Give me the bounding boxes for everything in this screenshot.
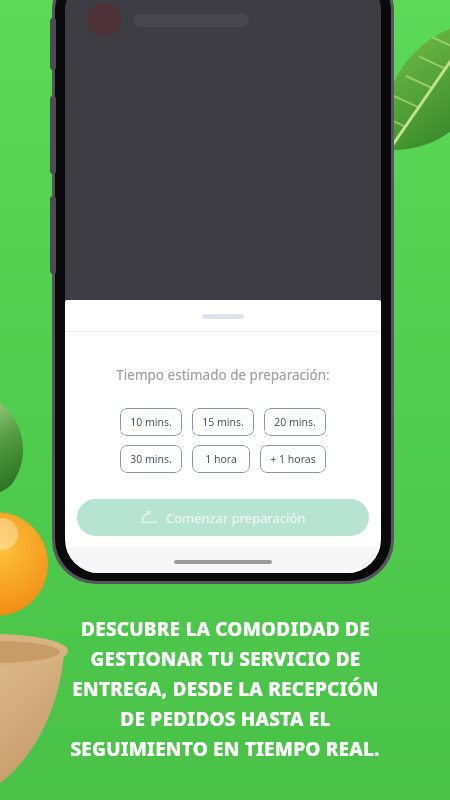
staticText: Comenzar preparación [166,509,306,527]
staticText: 30 mins. [130,452,172,466]
staticText: 20 mins. [274,415,316,429]
staticText: 1 hora [205,452,237,466]
button[interactable]: + 1 horas [260,445,326,473]
button[interactable]: 10 mins. [120,408,182,436]
staticText: 15 mins. [202,415,244,429]
button[interactable] [202,314,244,319]
staticText: + 1 horas [270,452,316,466]
staticText: GESTIONAR TU SERVICIO DE [90,646,361,672]
button[interactable]: 20 mins. [264,408,326,436]
button[interactable]: 30 mins. [120,445,182,473]
button[interactable]: Comenzar preparación [77,499,369,536]
staticText: SEGUIMIENTO EN TIEMPO REAL. [70,736,380,762]
staticText: ENTREGA, DESDE LA RECEPCIÓN [72,676,379,702]
button[interactable]: 15 mins. [192,408,254,436]
staticText: Tiempo estimado de preparación: [116,366,330,384]
other: Comenzar preparación [141,510,157,526]
staticText: DE PEDIDOS HASTA EL [120,706,331,732]
staticText: DESCUBRE LA COMODIDAD DE [81,616,370,642]
staticText: 10 mins. [130,415,172,429]
button[interactable]: 1 hora [192,445,250,473]
